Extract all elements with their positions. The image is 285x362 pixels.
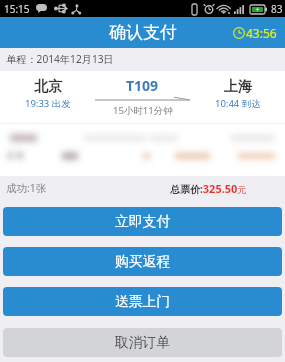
button[interactable]: 购买返程 xyxy=(3,247,282,276)
staticText: 15小时11分钟 xyxy=(113,104,173,117)
staticText: T109 xyxy=(126,76,159,95)
staticText: 购买返程 xyxy=(115,253,171,270)
staticText: 上海 xyxy=(224,78,252,96)
button[interactable]: 送票上门 xyxy=(3,287,282,316)
button[interactable]: 取消订单 xyxy=(3,328,282,357)
staticText: 43:56 xyxy=(246,25,277,41)
staticText: 取消订单 xyxy=(115,334,171,351)
staticText: 总票价:325.50元 xyxy=(170,181,247,196)
staticText: 确认支付 xyxy=(109,22,177,43)
staticText: 成功:1张 xyxy=(6,181,47,195)
staticText: 19:33 出发 xyxy=(25,97,71,110)
staticText: 北京 xyxy=(34,78,62,96)
staticText: 单程：2014年12月13日 xyxy=(6,52,114,66)
staticText: 立即支付 xyxy=(115,213,171,230)
staticText: 83 xyxy=(271,2,283,16)
button[interactable]: 立即支付 xyxy=(3,207,282,236)
staticText: 15:15 xyxy=(4,2,30,16)
staticText: 送票上门 xyxy=(115,293,171,310)
staticText: 10:44 到达 xyxy=(215,97,261,110)
